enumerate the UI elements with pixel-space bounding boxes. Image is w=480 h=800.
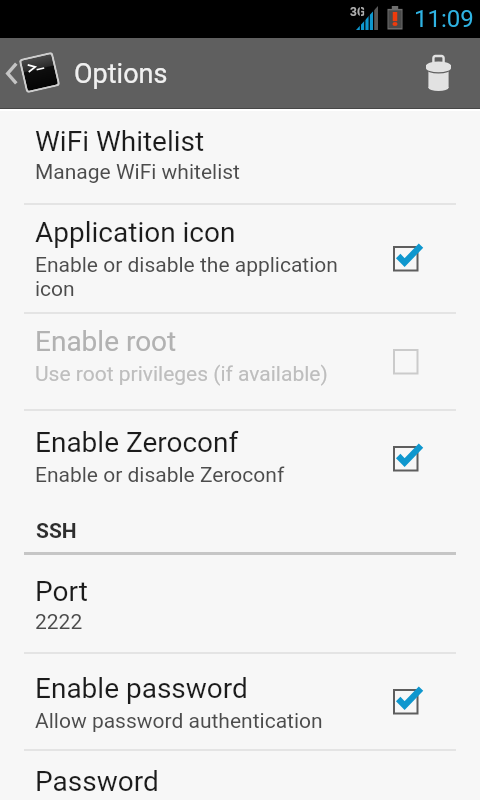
staticText: Application icon xyxy=(35,216,236,249)
button[interactable]: Enable root xyxy=(0,313,480,410)
staticText: WiFi Whitelist xyxy=(35,125,205,158)
button[interactable]: Application icon xyxy=(0,204,480,313)
button[interactable]: Enable Zeroconf xyxy=(0,410,480,502)
staticText: Password xyxy=(35,765,159,798)
staticText: SSH xyxy=(36,519,77,544)
staticText: Enable root xyxy=(35,325,177,358)
button[interactable]: Delete xyxy=(410,38,480,108)
staticText: 11:09 xyxy=(414,5,474,33)
button[interactable]: Navigate up xyxy=(0,38,66,108)
button[interactable]: Port xyxy=(0,556,480,653)
staticText: Port xyxy=(35,575,88,608)
staticText: Use root privileges (if available) xyxy=(35,362,328,387)
staticText: Enable Zeroconf xyxy=(35,426,239,459)
staticText: Enable password xyxy=(35,672,248,705)
staticText: Enable or disable Zeroconf xyxy=(35,463,285,488)
staticText: 3G xyxy=(350,5,366,19)
button[interactable]: Password xyxy=(0,750,480,800)
staticText: Manage WiFi whitelist xyxy=(35,160,240,185)
staticText: Allow password authentication xyxy=(35,709,323,734)
staticText: Options xyxy=(74,58,168,90)
button[interactable]: WiFi Whitelist xyxy=(0,112,480,204)
staticText: 2222 xyxy=(35,610,83,635)
button[interactable]: Enable password xyxy=(0,653,480,750)
staticText: Enable or disable the application icon xyxy=(35,253,338,301)
